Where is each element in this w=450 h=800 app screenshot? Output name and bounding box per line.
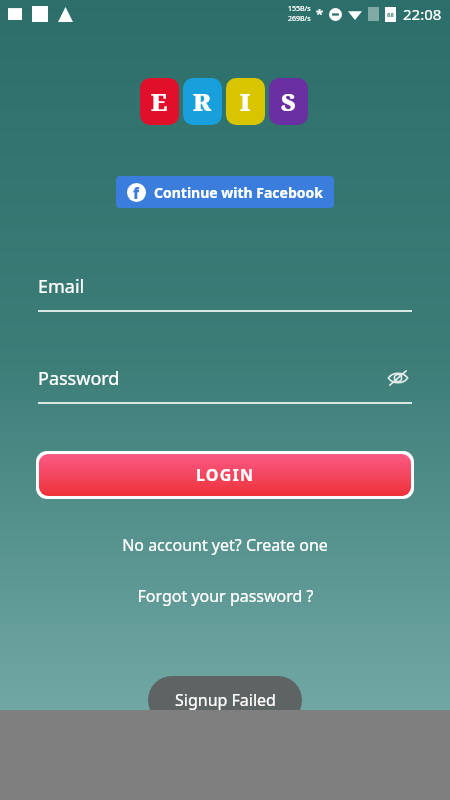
staticText: 88 bbox=[387, 11, 394, 19]
button[interactable]: LOGIN bbox=[39, 454, 411, 496]
staticText: Email bbox=[38, 274, 85, 299]
button[interactable]: Forgot your password ? bbox=[0, 582, 450, 610]
staticText: S bbox=[281, 85, 296, 118]
button[interactable]: Email bbox=[38, 274, 412, 312]
button[interactable]: Show password bbox=[384, 364, 412, 392]
staticText: No account yet? Create one bbox=[122, 534, 328, 556]
staticText: E bbox=[151, 85, 168, 118]
button[interactable]: f bbox=[116, 176, 334, 208]
staticText: Continue with Facebook bbox=[154, 183, 323, 202]
staticText: 269B/s bbox=[288, 14, 311, 24]
staticText: R bbox=[193, 85, 212, 118]
button[interactable]: No account yet? Create one bbox=[0, 531, 450, 559]
button[interactable]: Password bbox=[38, 366, 412, 404]
staticText: Signup Failed bbox=[175, 689, 276, 711]
staticText: I bbox=[240, 85, 251, 118]
staticText: f bbox=[133, 183, 140, 202]
staticText: LOGIN bbox=[196, 464, 255, 486]
staticText: 22:08 bbox=[403, 4, 442, 24]
staticText: Forgot your password ? bbox=[137, 585, 314, 607]
staticText: 155B/s bbox=[288, 4, 311, 14]
staticText: Password bbox=[38, 366, 120, 391]
staticText: * bbox=[316, 5, 324, 23]
